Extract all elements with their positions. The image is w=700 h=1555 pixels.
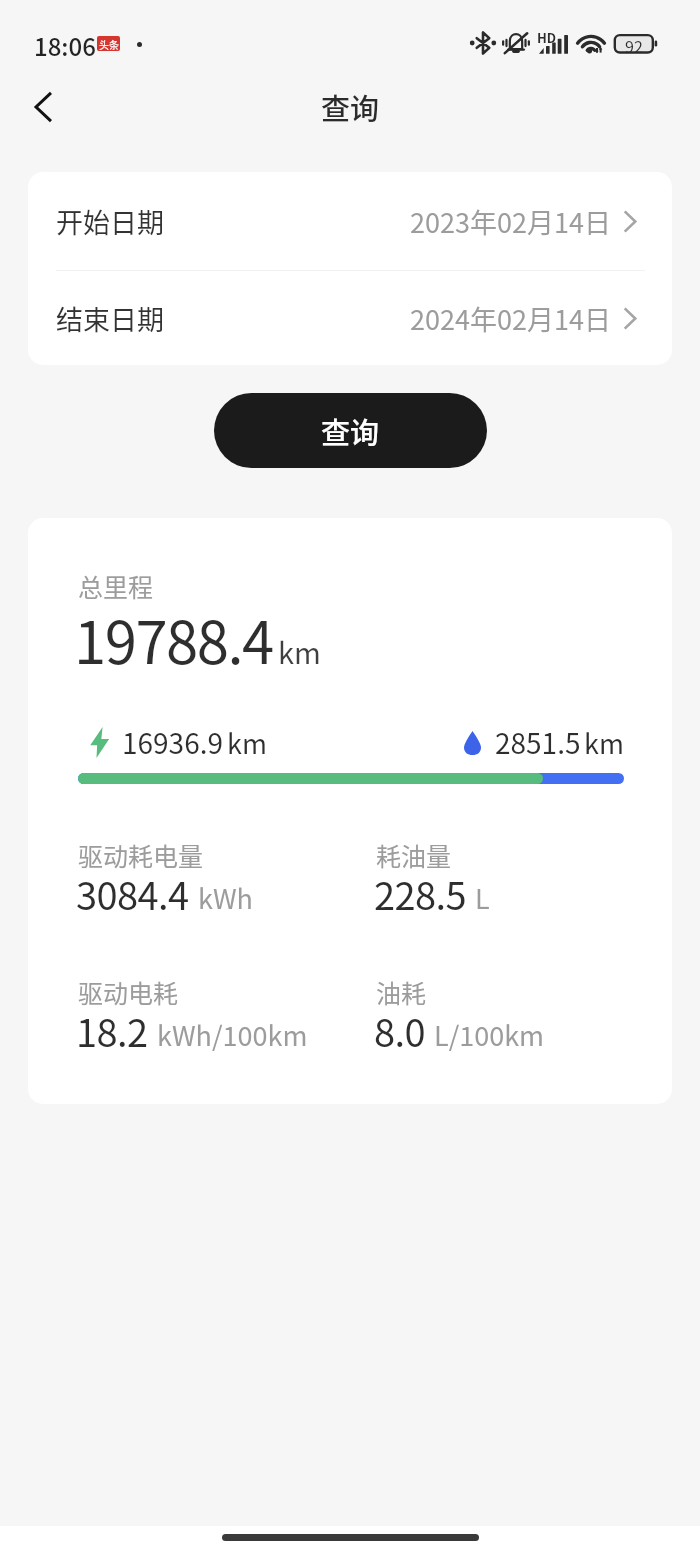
staticText: 2851.5	[495, 722, 581, 763]
staticText: 92	[625, 34, 643, 57]
staticText: 3084.4	[76, 866, 189, 921]
staticText: 2024年02月14日	[410, 299, 611, 338]
staticText: L/100km	[434, 1015, 545, 1054]
staticText: L	[475, 878, 490, 917]
staticText: 2023年02月14日	[410, 202, 611, 241]
staticText: 查询	[321, 410, 380, 452]
staticText: 总里程	[78, 568, 154, 604]
staticText: kWh/100km	[157, 1015, 308, 1054]
staticText: 18:06	[34, 28, 96, 63]
staticText: 油耗	[376, 974, 427, 1010]
staticText: 驱动电耗	[78, 974, 179, 1010]
button[interactable]: 开始日期	[28, 172, 672, 270]
staticText: kWh	[198, 878, 253, 917]
staticText: km	[227, 723, 267, 762]
staticText: 18.2	[76, 1003, 148, 1058]
staticText: 开始日期	[56, 202, 164, 241]
staticText: 耗油量	[376, 837, 452, 873]
staticText: 头条	[99, 37, 119, 51]
staticText: 228.5	[374, 866, 466, 921]
staticText: km	[584, 723, 624, 762]
staticText: 驱动耗电量	[78, 837, 204, 873]
button[interactable]: 查询	[214, 393, 487, 468]
staticText: 16936.9	[122, 722, 224, 763]
staticText: km	[278, 630, 321, 672]
button[interactable]: Back	[13, 77, 73, 137]
staticText: HD	[537, 28, 557, 47]
staticText: 8.0	[374, 1003, 425, 1058]
staticText: 结束日期	[56, 299, 164, 338]
button[interactable]: 结束日期	[28, 271, 672, 365]
staticText: 查询	[321, 86, 380, 128]
staticText: 19788.4	[74, 597, 273, 681]
